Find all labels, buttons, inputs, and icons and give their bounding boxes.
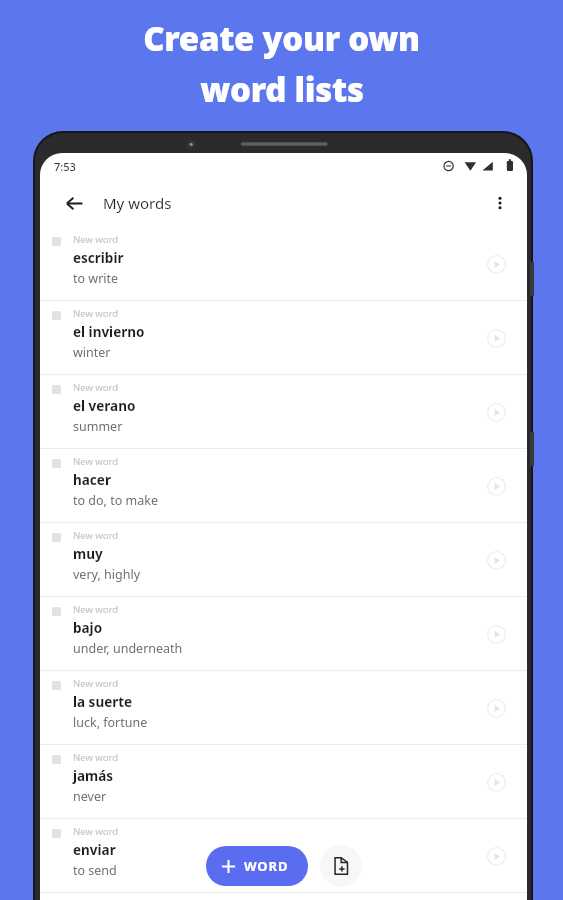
button[interactable]: New word — [40, 301, 527, 374]
staticText: to send — [73, 862, 117, 879]
button[interactable]: WORD — [206, 846, 308, 886]
button[interactable]: Play pronunciation — [481, 841, 511, 871]
button[interactable]: Play pronunciation — [481, 619, 511, 649]
staticText: New word — [73, 381, 119, 394]
staticText: 7:53 — [54, 159, 76, 174]
staticText: hacer — [73, 471, 111, 489]
staticText: word lists — [200, 67, 364, 112]
button[interactable]: Play pronunciation — [481, 693, 511, 723]
button[interactable]: New word — [40, 671, 527, 744]
staticText: Create your own — [143, 16, 420, 61]
staticText: el verano — [73, 397, 136, 415]
button[interactable]: New word — [40, 523, 527, 596]
button[interactable]: Play pronunciation — [481, 397, 511, 427]
staticText: My words — [103, 193, 172, 213]
staticText: to write — [73, 270, 119, 287]
staticText: never — [73, 788, 107, 805]
button[interactable]: More options — [483, 186, 517, 220]
staticText: summer — [73, 418, 123, 435]
button[interactable]: Play pronunciation — [481, 471, 511, 501]
staticText: New word — [73, 529, 119, 542]
staticText: muy — [73, 545, 103, 563]
staticText: winter — [73, 344, 111, 361]
staticText: New word — [73, 825, 119, 838]
button[interactable]: Play pronunciation — [481, 767, 511, 797]
staticText: escribir — [73, 249, 124, 267]
button[interactable]: New word — [40, 375, 527, 448]
staticText: bajo — [73, 619, 103, 637]
button[interactable]: New word — [40, 819, 527, 892]
staticText: la suerte — [73, 693, 133, 711]
staticText: New word — [73, 603, 119, 616]
button[interactable]: Play pronunciation — [481, 323, 511, 353]
staticText: WORD — [244, 857, 289, 875]
staticText: under, underneath — [73, 640, 183, 657]
staticText: to do, to make — [73, 492, 158, 509]
staticText: jamás — [73, 767, 114, 785]
staticText: very, highly — [73, 566, 141, 583]
staticText: New word — [73, 677, 119, 690]
button[interactable]: Play pronunciation — [481, 545, 511, 575]
staticText: New word — [73, 233, 119, 246]
staticText: luck, fortune — [73, 714, 148, 731]
button[interactable]: New word — [40, 227, 527, 300]
staticText: enviar — [73, 841, 116, 859]
staticText: New word — [73, 455, 119, 468]
button[interactable]: Play pronunciation — [481, 249, 511, 279]
button[interactable]: New word — [40, 745, 527, 818]
button[interactable]: Back — [58, 187, 90, 219]
button[interactable]: New word — [40, 449, 527, 522]
button[interactable]: New word — [40, 597, 527, 670]
staticText: el invierno — [73, 323, 145, 341]
staticText: New word — [73, 307, 119, 320]
staticText: New word — [73, 751, 119, 764]
button[interactable]: Create word list — [320, 845, 362, 887]
